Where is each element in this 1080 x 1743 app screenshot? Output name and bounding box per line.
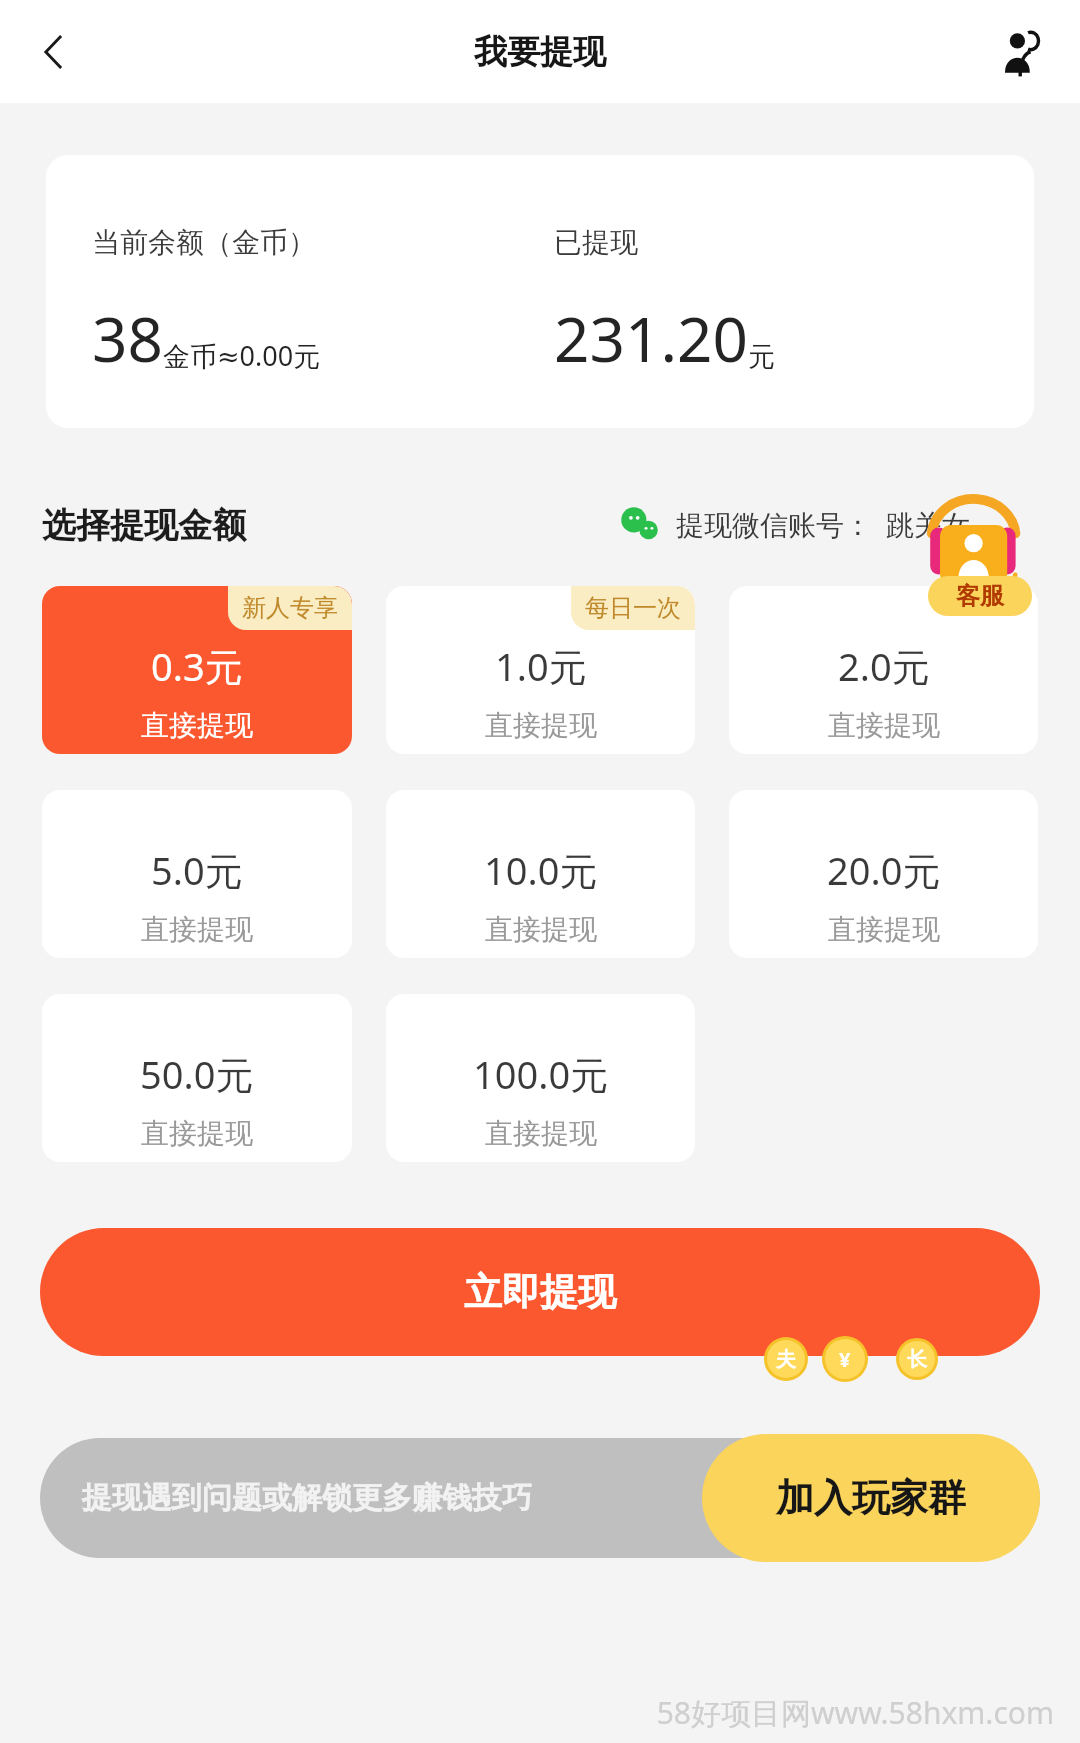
staticText: 20.0元 (827, 844, 941, 896)
button[interactable]: 立即提现 (40, 1228, 1040, 1356)
staticText: 金币≈0.00元 (163, 337, 321, 374)
staticText: 我要提现 (474, 31, 606, 73)
staticText: 客服 (956, 581, 1004, 611)
staticText: ¥ (839, 1346, 851, 1373)
button[interactable]: 加入玩家群 (702, 1434, 1040, 1562)
staticText: 10.0元 (484, 844, 598, 896)
button[interactable]: 20.0元 (729, 790, 1038, 958)
staticText: 跳关女 (886, 508, 970, 543)
button[interactable]: 5.0元 (42, 790, 352, 958)
staticText: 直接提现 (485, 708, 597, 743)
staticText: 直接提现 (141, 708, 253, 743)
button[interactable]: 每日一次 (386, 586, 695, 754)
staticText: 0.3元 (151, 640, 243, 692)
staticText: 夫 (776, 1347, 796, 1372)
staticText: 提现遇到问题或解锁更多赚钱技巧 (82, 1479, 532, 1517)
staticText: 5.0元 (151, 844, 243, 896)
staticText: 直接提现 (828, 708, 940, 743)
button[interactable]: 新人专享 (42, 586, 352, 754)
staticText: 选择提现金额 (42, 504, 246, 547)
button[interactable]: ¥ (822, 1336, 868, 1382)
staticText: 加入玩家群 (776, 1474, 966, 1522)
staticText: 1.0元 (495, 640, 587, 692)
staticText: 新人专享 (242, 593, 338, 623)
button[interactable]: 100.0元 (386, 994, 695, 1162)
staticText: 元 (748, 340, 775, 374)
staticText: 38 (92, 296, 163, 380)
button[interactable]: 提现遇到问题或解锁更多赚钱技巧 (40, 1438, 1040, 1558)
staticText: 50.0元 (140, 1048, 254, 1100)
staticText: 当前余额（金币） (92, 225, 316, 260)
staticText: 长 (907, 1347, 927, 1372)
staticText: 每日一次 (585, 593, 681, 623)
staticText: 直接提现 (141, 1116, 253, 1151)
staticText: 直接提现 (828, 912, 940, 947)
staticText: 直接提现 (485, 1116, 597, 1151)
staticText: 231.20 (554, 296, 748, 380)
button[interactable]: 客服 (912, 486, 1052, 616)
button[interactable]: 50.0元 (42, 994, 352, 1162)
button[interactable]: 10.0元 (386, 790, 695, 958)
button[interactable]: 提现微信账号： (620, 504, 970, 546)
button[interactable]: 夫 (764, 1337, 808, 1381)
button[interactable]: 长 (896, 1338, 938, 1380)
button[interactable]: 当前余额（金币） (46, 155, 1034, 428)
staticText: 提现微信账号： (676, 508, 872, 543)
staticText: 58好项目网www.58hxm.com (0, 1692, 1054, 1733)
staticText: 已提现 (554, 225, 638, 260)
staticText: 2.0元 (838, 640, 930, 692)
staticText: 直接提现 (141, 912, 253, 947)
staticText: 直接提现 (485, 912, 597, 947)
staticText: 立即提现 (464, 1268, 616, 1316)
button[interactable]: Profile (986, 16, 1058, 88)
staticText: 100.0元 (473, 1048, 609, 1100)
button[interactable]: Back (18, 16, 90, 88)
button[interactable]: 2.0元 (729, 586, 1038, 754)
